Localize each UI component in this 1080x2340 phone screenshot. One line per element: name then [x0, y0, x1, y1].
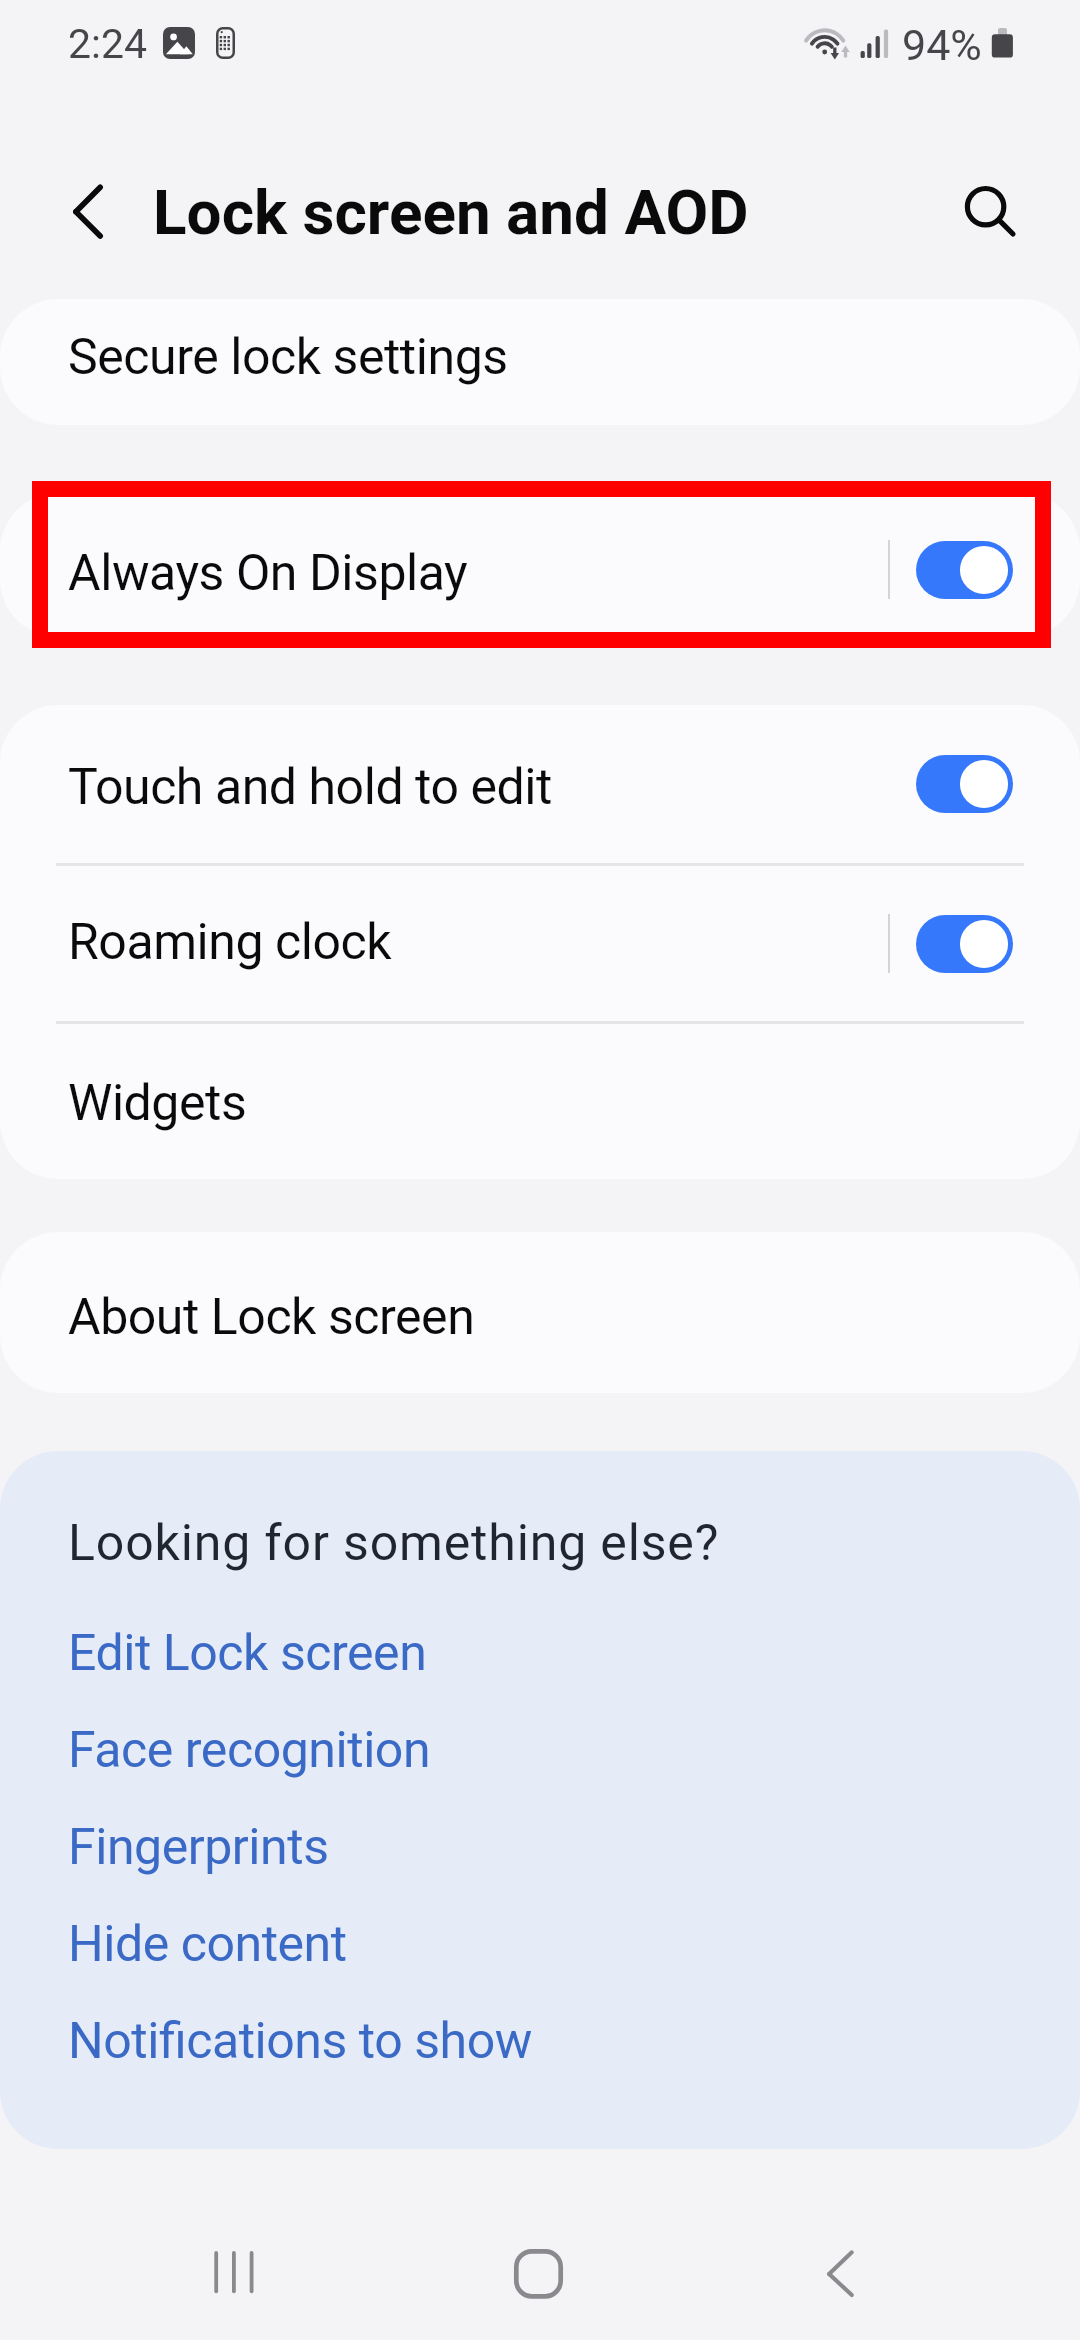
- staticText: Secure lock settings: [68, 328, 508, 387]
- button[interactable]: Always On Display: [0, 493, 888, 637]
- staticText: Roaming clock: [68, 913, 392, 972]
- staticText: Notifications to show: [68, 2012, 532, 2071]
- button[interactable]: Recent apps: [176, 2234, 296, 2314]
- staticText: Hide content: [68, 1915, 347, 1974]
- staticText: Face recognition: [68, 1721, 431, 1780]
- staticText: Looking for something else?: [68, 1514, 720, 1573]
- button[interactable]: Fingerprints: [0, 1798, 1080, 1895]
- button[interactable]: Touch and hold to edit: [0, 705, 888, 863]
- button[interactable]: Face recognition: [0, 1701, 1080, 1798]
- staticText: Fingerprints: [68, 1818, 329, 1877]
- staticText: Touch and hold to edit: [68, 758, 552, 817]
- button[interactable]: Roaming clock: [0, 866, 888, 1021]
- button[interactable]: Always On Display switch: [890, 498, 1080, 637]
- button[interactable]: Edit Lock screen: [0, 1604, 1080, 1701]
- button[interactable]: Touch and hold to edit switch: [890, 705, 1080, 863]
- staticText: Edit Lock screen: [68, 1624, 427, 1683]
- staticText: Lock screen and AOD: [153, 176, 749, 249]
- button[interactable]: Secure lock settings: [0, 299, 1080, 425]
- staticText: Widgets: [68, 1074, 247, 1133]
- button[interactable]: Widgets: [0, 1024, 1080, 1179]
- staticText: About Lock screen: [68, 1288, 475, 1347]
- button[interactable]: Search: [938, 160, 1034, 256]
- staticText: 94%: [902, 20, 982, 70]
- staticText: Always On Display: [68, 544, 468, 603]
- button[interactable]: Notifications to show: [0, 1992, 1080, 2089]
- button[interactable]: Hide content: [0, 1895, 1080, 1992]
- staticText: 2:24: [68, 20, 148, 68]
- button[interactable]: About Lock screen: [0, 1232, 1080, 1393]
- button[interactable]: Back: [780, 2234, 900, 2314]
- button[interactable]: Home: [478, 2234, 598, 2314]
- button[interactable]: Navigate up: [40, 165, 136, 261]
- button[interactable]: Roaming clock switch: [890, 866, 1080, 1021]
